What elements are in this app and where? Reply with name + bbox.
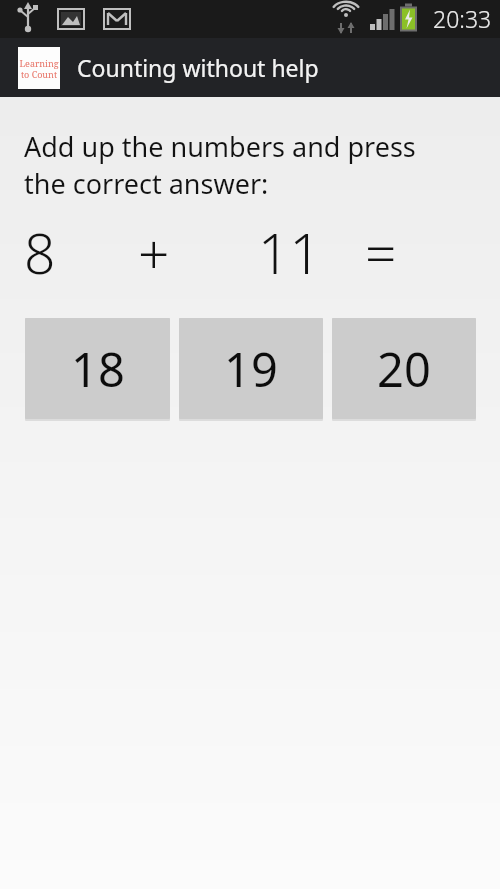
staticText: Counting without help xyxy=(77,52,319,83)
staticText: + xyxy=(138,215,170,287)
staticText: 8 xyxy=(24,215,56,287)
staticText: = xyxy=(365,215,397,287)
staticText: Add up the numbers and press the correct… xyxy=(24,128,416,202)
staticText: 20 xyxy=(377,337,431,401)
staticText: 19 xyxy=(224,337,278,401)
button[interactable]: 20 xyxy=(332,318,476,419)
button[interactable]: 18 xyxy=(25,318,170,419)
staticText: 11 xyxy=(258,215,321,287)
staticText: 20:33 xyxy=(433,3,492,34)
staticText: Learning to Count xyxy=(19,57,59,80)
staticText: 18 xyxy=(71,337,125,401)
button[interactable]: 19 xyxy=(179,318,323,419)
